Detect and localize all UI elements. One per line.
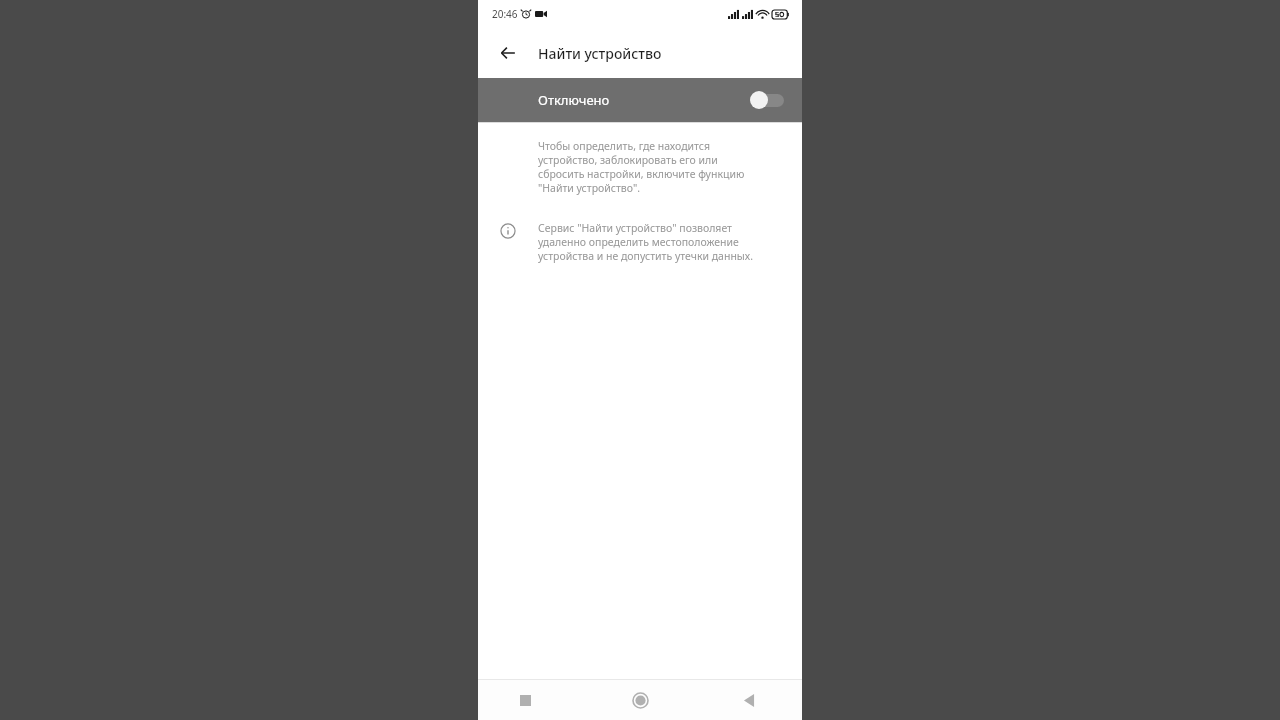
button[interactable]: Назад xyxy=(694,680,802,720)
button[interactable]: Главный экран xyxy=(586,680,694,720)
button[interactable]: Назад xyxy=(488,33,528,73)
staticText: Найти устройство xyxy=(538,44,662,63)
button[interactable]: Отключено xyxy=(478,78,802,122)
other: Переключатель xyxy=(750,91,784,109)
staticText: 20:46 xyxy=(492,7,518,21)
button[interactable]: Недавние приложения xyxy=(478,680,586,720)
staticText: Сервис "Найти устройство" позволяет удал… xyxy=(538,221,753,263)
staticText: Отключено xyxy=(538,91,610,109)
staticText: Чтобы определить, где находится устройст… xyxy=(538,139,745,195)
